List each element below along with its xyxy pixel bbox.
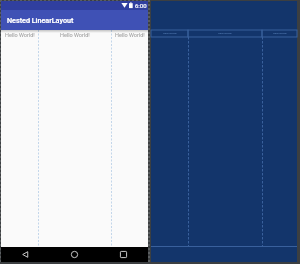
staticText: Hello World! bbox=[273, 32, 287, 35]
staticText: Hello World! bbox=[218, 32, 232, 35]
staticText: Hello World! bbox=[60, 32, 90, 38]
staticText: Hello World! bbox=[5, 32, 35, 38]
staticText: Nested LinearLayout bbox=[7, 16, 74, 24]
staticText: Hello World! bbox=[163, 32, 177, 35]
staticText: Hello World! bbox=[115, 32, 145, 38]
button[interactable]: Back bbox=[1, 247, 50, 262]
button[interactable]: Home bbox=[50, 247, 99, 262]
staticText: 6:00 bbox=[135, 2, 147, 9]
button[interactable]: Recents bbox=[99, 247, 148, 262]
